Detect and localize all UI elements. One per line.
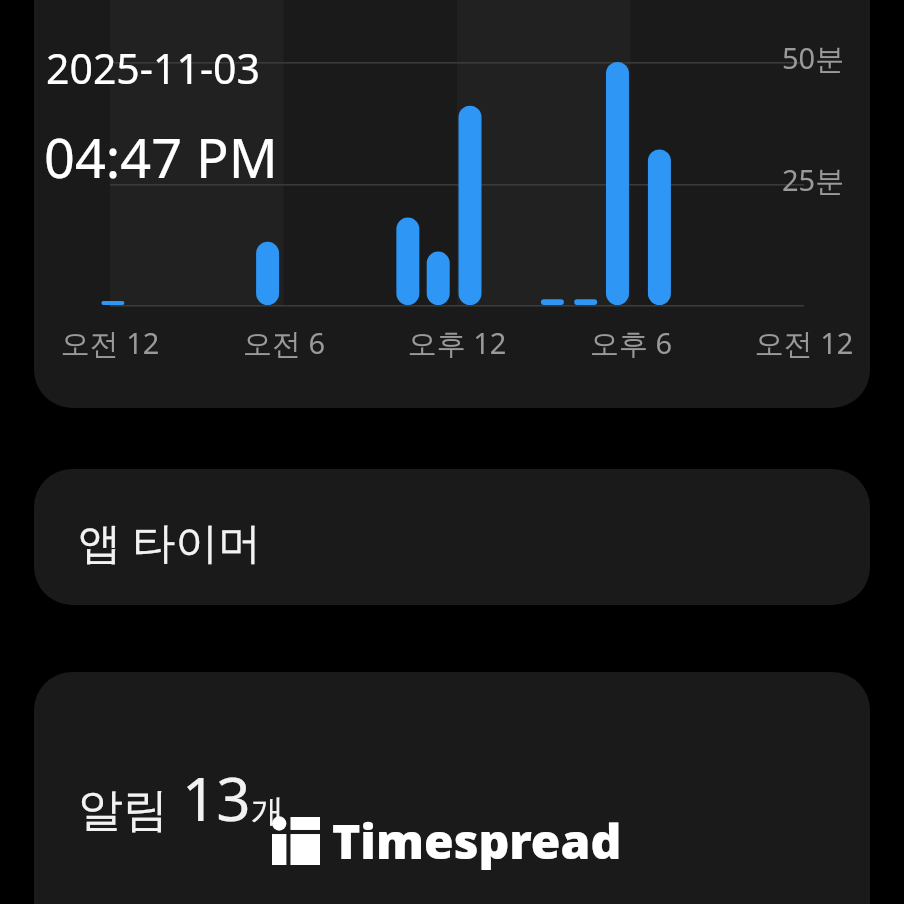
staticText: 앱 타이머 — [78, 512, 262, 571]
staticText: 04:47 PM — [44, 120, 278, 194]
staticText: 개 — [251, 791, 284, 833]
staticText: 13 — [182, 757, 251, 839]
staticText: 오전 6 — [214, 323, 354, 363]
button[interactable]: 알림 — [34, 672, 870, 904]
staticText: 알림 — [78, 782, 168, 839]
staticText: 50분 — [782, 38, 845, 78]
staticText: Timespread — [332, 808, 622, 873]
other: Timespread logo — [272, 817, 320, 865]
button[interactable]: 2025-11-03 — [34, 0, 870, 408]
staticText: 25분 — [782, 160, 845, 200]
staticText: 2025-11-03 — [46, 40, 261, 96]
staticText: 오전 12 — [734, 323, 870, 363]
staticText: 오후 6 — [561, 323, 701, 363]
button[interactable]: 앱 타이머 — [34, 469, 870, 605]
staticText: 오후 12 — [387, 323, 527, 363]
staticText: 오전 12 — [40, 323, 180, 363]
